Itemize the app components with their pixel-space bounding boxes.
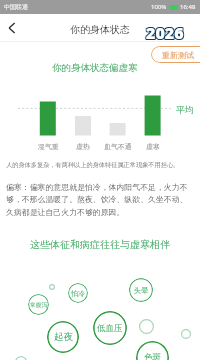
staticText: 色斑: [144, 352, 161, 360]
staticText: 湿气重: [38, 142, 59, 151]
button[interactable]: 低血压: [93, 311, 127, 345]
staticText: 平均: [176, 104, 194, 115]
staticText: 2026: [145, 21, 183, 43]
staticText: 2026: [146, 22, 184, 44]
staticText: 重新测试: [162, 50, 194, 60]
staticText: 2026: [147, 22, 185, 44]
button[interactable]: 色斑: [136, 341, 169, 360]
button[interactable]: Back: [2, 18, 22, 38]
staticText: 2026: [147, 23, 185, 45]
staticText: 16:48: [180, 3, 196, 11]
staticText: 2026: [146, 21, 184, 43]
staticText: 这些体征和病症往往与虚寒相伴: [30, 238, 170, 251]
staticText: 头晕: [134, 286, 149, 295]
staticText: 2026: [147, 21, 185, 43]
staticText: 人的身体多复杂，有两种以上的身体特征属正常现象不用担心。: [6, 161, 180, 169]
staticText: 低血压: [97, 323, 123, 334]
staticText: 怕冷: [71, 289, 85, 298]
button[interactable]: 常腹泻: [28, 294, 49, 315]
staticText: 起夜: [54, 331, 73, 343]
staticText: 你的身体状态: [70, 23, 130, 36]
staticText: 偏寒：偏寒的意思就是怕冷，体内阳气不足，火力不够，不那么温暖了。熬夜、饮冷、纵欲…: [6, 182, 192, 218]
staticText: 虚热: [76, 142, 90, 151]
button[interactable]: 怕冷: [68, 283, 88, 303]
staticText: 你的身体状态偏虚寒: [52, 62, 138, 74]
staticText: 中国联通: [4, 3, 28, 11]
staticText: 2026: [146, 23, 184, 45]
staticText: 血气不通: [104, 142, 132, 151]
button[interactable]: 起夜: [47, 321, 79, 353]
staticText: 虚寒: [146, 142, 160, 151]
button[interactable]: 头晕: [129, 278, 153, 302]
button[interactable]: 重新测试: [151, 46, 200, 63]
staticText: 2026: [145, 22, 183, 44]
staticText: 100%: [151, 3, 167, 11]
staticText: 2026: [145, 23, 183, 45]
staticText: 常腹泻: [30, 301, 48, 308]
